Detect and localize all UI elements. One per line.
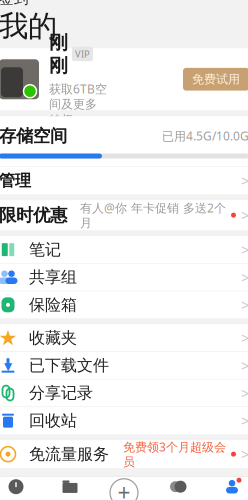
staticText: 笔记 — [29, 240, 61, 259]
staticText: 已用4.5G/10.0G — [162, 128, 248, 144]
staticText: > — [241, 205, 248, 225]
staticText: 已下载文件 — [29, 356, 109, 375]
button[interactable]: 管理 — [0, 167, 248, 194]
staticText: 有人@你 年卡促销 多送2个月 — [80, 200, 226, 230]
staticText: 我的 — [0, 8, 57, 44]
button[interactable]: 最近 — [0, 477, 39, 500]
staticText: 存储空间 — [0, 125, 67, 147]
staticText: > — [241, 411, 248, 430]
button[interactable]: 共享组 — [0, 264, 248, 291]
button[interactable]: ▼ — [0, 352, 248, 379]
button[interactable]: 免流量服务 — [0, 440, 248, 468]
staticText: > — [241, 267, 248, 287]
staticText: + — [117, 478, 130, 500]
staticText: ▼ — [4, 360, 12, 372]
staticText: > — [241, 328, 248, 348]
staticText: > — [241, 356, 248, 375]
staticText: 回收站 — [29, 411, 77, 430]
staticText: 免费领3个月超级会员 — [123, 439, 226, 469]
staticText: > — [241, 295, 248, 315]
button[interactable]: ★ — [0, 324, 248, 351]
staticText: 获取6TB空间及更多特权> — [49, 81, 107, 127]
button[interactable]: 签到 — [0, 0, 48, 9]
staticText: 刚刚 — [49, 31, 68, 77]
staticText: > — [241, 383, 248, 403]
staticText: > — [241, 240, 248, 259]
staticText: 免流量服务 — [29, 444, 109, 464]
staticText: 免费试用 — [192, 72, 240, 87]
staticText: > — [241, 171, 248, 190]
button[interactable]: Add — [104, 473, 144, 500]
staticText: 限时优惠 — [0, 204, 67, 226]
button[interactable]: 限时优惠 — [0, 200, 248, 230]
button[interactable]: 笔记 — [0, 236, 248, 263]
staticText: 签到 — [0, 0, 29, 7]
staticText: 收藏夹 — [29, 328, 77, 348]
staticText: 分享记录 — [29, 383, 93, 403]
button[interactable]: 回收站 — [0, 407, 248, 434]
button[interactable]: 分享记录 — [0, 379, 248, 406]
staticText: > — [241, 444, 248, 464]
button[interactable]: 免费试用 — [183, 68, 248, 91]
button[interactable]: 文件 — [47, 477, 93, 500]
staticText: VIP — [75, 48, 90, 60]
staticText: ★ — [0, 326, 17, 350]
button[interactable]: 照片 — [155, 477, 201, 500]
button[interactable]: 刚刚 — [0, 48, 248, 110]
button[interactable]: 我的 — [209, 477, 248, 500]
button[interactable]: 保险箱 — [0, 291, 248, 318]
staticText: 共享组 — [29, 267, 77, 287]
staticText: 保险箱 — [29, 295, 77, 315]
staticText: 管理 — [0, 171, 31, 190]
